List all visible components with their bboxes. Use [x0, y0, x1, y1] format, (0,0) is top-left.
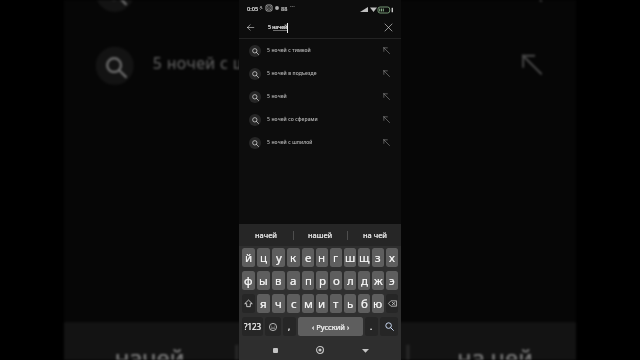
staticText: 5 ночей в подъезде	[267, 70, 317, 77]
button[interactable]: б	[358, 294, 370, 313]
staticText: с	[291, 296, 297, 312]
button[interactable]: я	[257, 294, 270, 313]
staticText: й	[245, 250, 253, 266]
staticText: ш	[345, 250, 356, 266]
button[interactable]: р	[316, 271, 328, 290]
staticText: ,	[288, 321, 291, 332]
staticText: у	[276, 250, 282, 266]
button[interactable]: Recent apps	[266, 341, 284, 359]
button[interactable]: у	[272, 248, 285, 267]
button[interactable]: Home	[311, 341, 329, 359]
button[interactable]: х	[386, 248, 398, 267]
button[interactable]: з	[372, 248, 384, 267]
button[interactable]: ц	[257, 248, 270, 267]
button[interactable]: в	[272, 271, 285, 290]
button[interactable]: и	[316, 294, 328, 313]
button[interactable]: й	[242, 248, 255, 267]
staticText: г	[333, 250, 339, 266]
button[interactable]: а	[287, 271, 300, 290]
button[interactable]: т	[330, 294, 342, 313]
staticText: о	[333, 273, 340, 289]
button[interactable]: начей	[239, 224, 293, 246]
button[interactable]: ф	[242, 271, 255, 290]
staticText: ы	[259, 273, 268, 289]
staticText: з	[375, 250, 381, 266]
button[interactable]: п	[302, 271, 314, 290]
staticText: е	[305, 250, 312, 266]
button[interactable]: Backspace	[386, 294, 398, 313]
staticText: р	[319, 273, 326, 289]
button[interactable]: 5 ночей с шпилой	[239, 131, 401, 154]
button[interactable]: Clear query	[381, 20, 396, 35]
button[interactable]: щ	[358, 248, 370, 267]
staticText: 5 ночей со сферами	[153, 0, 314, 2]
staticText: щ	[359, 250, 370, 266]
button[interactable]: Shift	[242, 294, 255, 313]
staticText: 5 ночей со сферами	[267, 116, 318, 123]
staticText: ф	[244, 273, 253, 289]
button[interactable]: э	[386, 271, 398, 290]
button[interactable]: Back	[243, 20, 258, 35]
staticText: ь	[347, 296, 354, 312]
staticText: я	[260, 296, 267, 312]
staticText: начей	[115, 342, 184, 360]
staticText: ?123	[244, 321, 262, 332]
button[interactable]: к	[287, 248, 300, 267]
staticText: х	[389, 250, 395, 266]
button[interactable]: 5 ночей со сферами	[64, 0, 576, 28]
staticText: в	[275, 273, 282, 289]
button[interactable]: ю	[372, 294, 384, 313]
staticText: ю	[373, 296, 383, 312]
button[interactable]: Hide keyboard	[356, 341, 374, 359]
staticText: а	[290, 273, 297, 289]
staticText: нашей	[308, 230, 333, 240]
button[interactable]: Emoji	[265, 317, 281, 336]
staticText: 5 начей	[268, 24, 288, 31]
button[interactable]: 5 ночей	[239, 85, 401, 108]
button[interactable]: ,	[283, 317, 296, 336]
staticText: п	[305, 273, 312, 289]
button[interactable]: Search	[380, 317, 398, 336]
staticText: м	[304, 296, 313, 312]
button[interactable]: 5 ночей с тимкой	[239, 39, 401, 62]
button[interactable]: м	[302, 294, 314, 313]
staticText: .	[370, 321, 373, 332]
staticText: 5 ночей с шпилой	[267, 139, 313, 146]
button[interactable]: л	[344, 271, 356, 290]
button[interactable]: д	[358, 271, 370, 290]
button[interactable]: на чей	[348, 224, 401, 246]
staticText: т	[333, 296, 339, 312]
staticText: на чей	[363, 230, 387, 240]
staticText: 5 ночей	[267, 93, 287, 100]
button[interactable]: ы	[257, 271, 270, 290]
button[interactable]: 5 ночей со сферами	[239, 108, 401, 131]
button[interactable]: ж	[372, 271, 384, 290]
staticText: нашей	[283, 342, 362, 360]
button[interactable]: н	[316, 248, 328, 267]
button[interactable]: нашей	[294, 224, 347, 246]
button[interactable]: .	[365, 317, 378, 336]
staticText: 5 ночей с тимкой	[267, 47, 311, 54]
button[interactable]: о	[330, 271, 342, 290]
button[interactable]: ‹ Русский ›	[298, 317, 363, 336]
button[interactable]: ч	[272, 294, 285, 313]
button[interactable]: ь	[344, 294, 356, 313]
button[interactable]: ?123	[242, 317, 263, 336]
staticText: ж	[374, 273, 383, 289]
staticText: 88	[281, 5, 288, 13]
button[interactable]: с	[287, 294, 300, 313]
staticText: э	[389, 273, 395, 289]
staticText: л	[347, 273, 354, 289]
button[interactable]: начей	[64, 323, 235, 360]
staticText: ‹ Русский ›	[312, 322, 350, 332]
button[interactable]: 5 ночей в подъезде	[239, 62, 401, 85]
staticText: д	[361, 273, 368, 289]
button[interactable]: е	[302, 248, 314, 267]
staticText: начей	[255, 230, 277, 240]
button[interactable]: ш	[344, 248, 356, 267]
button[interactable]: г	[330, 248, 342, 267]
button[interactable]: 5 ночей с шпилой	[64, 28, 576, 101]
button[interactable]: на чей	[409, 323, 576, 360]
button[interactable]: нашей	[238, 323, 406, 360]
staticText: ц	[260, 250, 268, 266]
